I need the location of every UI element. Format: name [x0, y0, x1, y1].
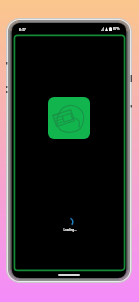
- staticText: 87%: [113, 27, 120, 31]
- staticText: Loading...: [63, 228, 77, 232]
- staticText: 8:37: [19, 27, 26, 32]
- button[interactable]: App icon: [48, 97, 90, 139]
